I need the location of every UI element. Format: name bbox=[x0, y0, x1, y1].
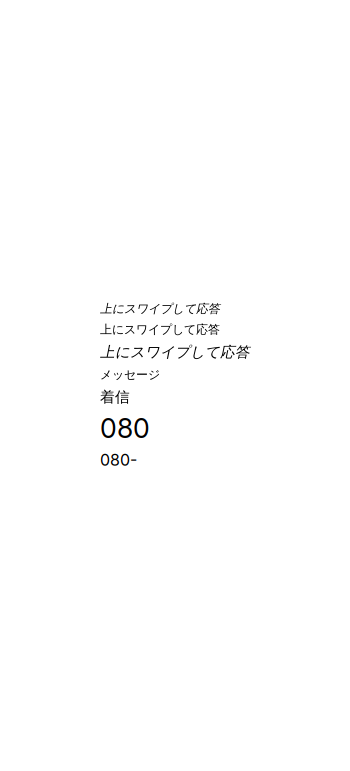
staticText: 080- bbox=[100, 450, 137, 470]
staticText: 080 bbox=[100, 412, 150, 444]
staticText: 着信 bbox=[100, 388, 130, 406]
staticText: 上にスワイプして応答 bbox=[100, 301, 220, 316]
staticText: メッセージ bbox=[100, 367, 160, 382]
staticText: 上にスワイプして応答 bbox=[100, 343, 250, 361]
staticText: 上にスワイプして応答 bbox=[100, 322, 220, 337]
